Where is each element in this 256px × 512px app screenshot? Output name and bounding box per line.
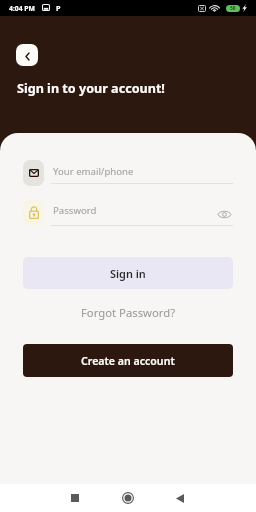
- staticText: Your email/phone: [53, 165, 134, 178]
- button[interactable]: Recents: [63, 486, 87, 510]
- staticText: Sign in to your account!: [17, 80, 165, 97]
- staticText: 58: [230, 5, 236, 12]
- button[interactable]: Sign in: [23, 257, 233, 289]
- button[interactable]: Home: [116, 486, 140, 510]
- button[interactable]: Show password: [214, 204, 234, 224]
- button[interactable]: Back: [168, 486, 192, 510]
- button[interactable]: Forgot Password?: [75, 303, 182, 322]
- staticText: P: [56, 3, 61, 13]
- staticText: Sign in: [110, 266, 146, 281]
- staticText: Password: [53, 204, 97, 217]
- staticText: Create an account: [81, 354, 175, 368]
- button[interactable]: Back: [16, 44, 38, 66]
- staticText: 4:04 PM: [9, 4, 35, 13]
- button[interactable]: Create an account: [23, 344, 233, 377]
